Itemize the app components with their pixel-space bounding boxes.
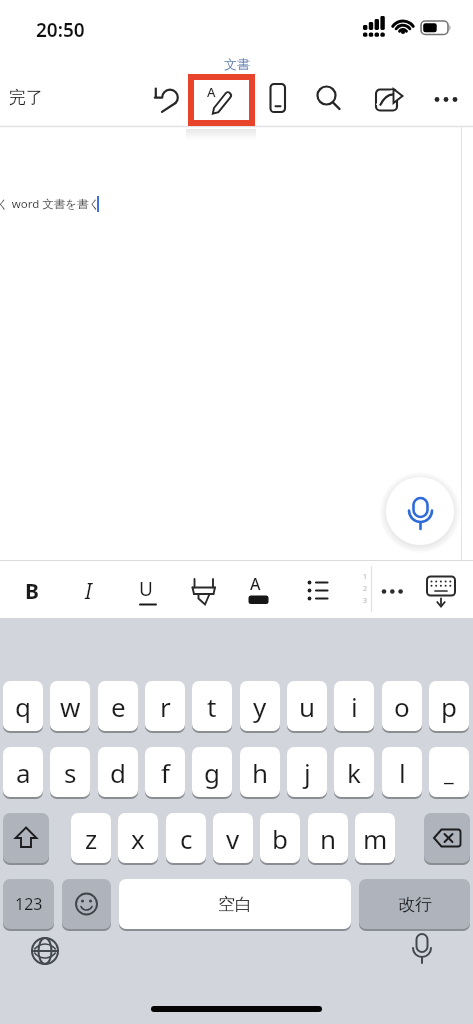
button[interactable]: y [240,681,280,731]
button[interactable] [402,928,442,972]
staticText: z [85,821,98,856]
staticText: p [441,689,457,724]
staticText: c [180,821,193,856]
staticText: r [160,689,171,724]
button[interactable] [0,0,473,1024]
button[interactable]: _ [429,747,469,797]
button[interactable]: o [382,681,422,731]
button[interactable]: e [98,681,138,731]
button[interactable]: p [429,681,469,731]
button[interactable]: 改行 [359,879,470,929]
staticText: a [16,755,31,790]
staticText: 2 [363,584,368,594]
staticText: f [161,755,170,790]
staticText: 文書 [224,56,250,72]
button[interactable]: f [145,747,185,797]
staticText: i [351,689,358,724]
staticText: 改行 [398,894,432,915]
button[interactable] [424,813,470,863]
staticText: s [64,755,77,790]
button[interactable]: U [133,574,163,608]
staticText: m [363,821,388,856]
button[interactable]: s [50,747,90,797]
button[interactable]: t [192,681,232,731]
button[interactable]: k [334,747,374,797]
button[interactable] [3,813,49,863]
staticText: v [226,821,240,856]
button[interactable]: m [355,813,395,863]
staticText: w [60,689,81,724]
staticText: n [320,821,337,856]
button[interactable]: h [240,747,280,797]
staticText: b [272,821,288,856]
staticText: k [347,755,361,790]
button[interactable]: I [76,574,104,608]
staticText: e [111,689,126,724]
button[interactable]: v [213,813,253,863]
staticText: A [207,83,216,101]
staticText: h [252,755,269,790]
button[interactable]: A [244,570,274,610]
button[interactable] [62,879,111,929]
staticText: u [299,689,316,724]
button[interactable]: a [3,747,43,797]
staticText: A [250,573,261,595]
button[interactable]: B [18,574,46,608]
button[interactable]: w [50,681,90,731]
staticText: B [25,577,39,606]
button[interactable]: n [308,813,348,863]
staticText: d [110,755,126,790]
staticText: x [131,821,145,856]
staticText: q [15,689,31,724]
button[interactable]: q [3,681,43,731]
staticText: く word 文書を書く [0,196,101,212]
staticText: U [139,576,153,602]
button[interactable]: i [334,681,374,731]
staticText: 1 [363,572,368,582]
staticText: t [207,689,217,724]
button[interactable]: g [192,747,232,797]
staticText: l [399,755,406,790]
staticText: 完了 [9,87,43,108]
button[interactable]: c [166,813,206,863]
staticText: o [394,689,410,724]
button[interactable]: r [145,681,185,731]
staticText: 3 [363,596,368,606]
button[interactable]: u [287,681,327,731]
staticText: 20:50 [36,17,85,43]
button[interactable]: z [71,813,111,863]
button[interactable]: 空白 [119,879,351,929]
staticText: I [85,577,92,606]
button[interactable]: 123 [3,879,54,929]
button[interactable]: 完了 [6,86,58,114]
button[interactable]: x [118,813,158,863]
button[interactable]: l [382,747,422,797]
staticText: j [304,755,311,790]
staticText: g [204,755,220,790]
button[interactable]: b [260,813,300,863]
button[interactable]: j [287,747,327,797]
staticText: _ [444,757,454,787]
button[interactable] [386,477,454,545]
staticText: y [253,689,267,724]
staticText: 空白 [218,894,252,915]
button[interactable] [25,931,65,971]
button[interactable]: d [98,747,138,797]
staticText: 123 [15,893,43,915]
